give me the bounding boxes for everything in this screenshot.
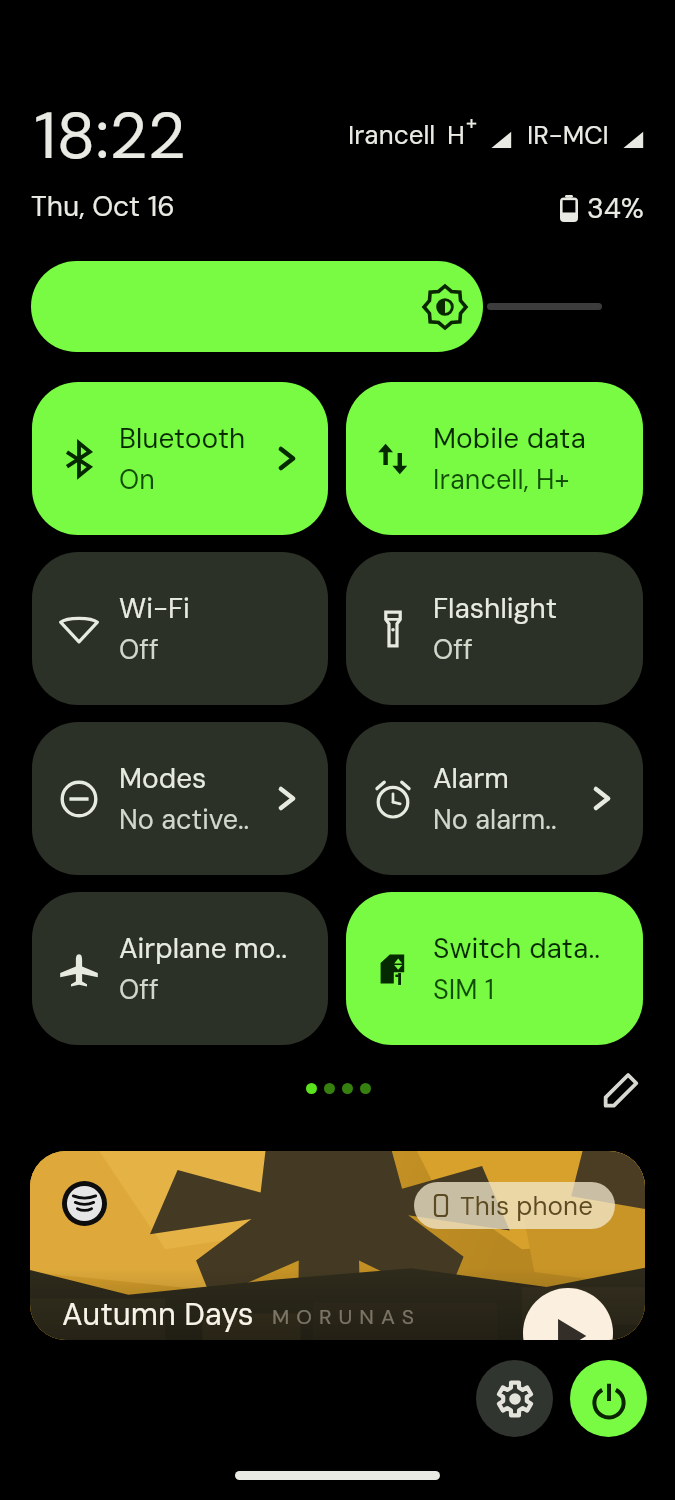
button[interactable]: Alarm [346,722,643,875]
button[interactable]: Spotify [30,1151,645,1340]
staticText: No alarm.. [433,802,557,837]
button[interactable]: Flashlight [346,552,643,705]
button[interactable]: Mobile data [346,382,643,535]
staticText: Mobile data [433,420,586,456]
staticText: Switch data.. [433,930,601,966]
button[interactable]: Brightness [31,261,483,352]
staticText: Alarm [433,760,509,796]
staticText: + [466,110,477,136]
button[interactable]: Wi-Fi [32,552,328,705]
button[interactable]: Settings [476,1360,553,1437]
staticText: Bluetooth [119,420,246,456]
staticText: IR-MCI [527,118,609,152]
staticText: This phone [460,1189,593,1223]
staticText: Off [433,632,473,667]
staticText: No active.. [119,802,250,837]
button[interactable]: Edit tiles [600,1068,642,1110]
staticText: Irancell, H+ [433,462,570,497]
button[interactable]: Modes [32,722,328,875]
button[interactable]: Bluetooth [32,382,328,535]
staticText: Irancell [348,118,436,152]
staticText: MORUNAS [272,1303,422,1330]
staticText: Modes [119,760,207,796]
staticText: 34% [587,190,644,226]
staticText: Wi-Fi [119,590,190,626]
button[interactable]: Switch data.. [346,892,643,1045]
button[interactable]: This phone [414,1182,615,1229]
staticText: Off [119,632,159,667]
staticText: Flashlight [433,590,558,626]
staticText: SIM 1 [433,972,495,1007]
staticText: On [119,462,155,497]
button[interactable]: Power [570,1360,647,1437]
button[interactable]: Spotify [62,1181,107,1226]
staticText: Off [119,972,159,1007]
button[interactable]: Airplane mo.. [32,892,328,1045]
button[interactable]: Play [523,1288,613,1340]
staticText: 18:22 [34,94,186,179]
staticText: H [447,118,465,152]
staticText: Thu, Oct 16 [31,188,175,224]
staticText: Autumn Days [62,1294,254,1334]
staticText: Airplane mo.. [119,930,288,966]
